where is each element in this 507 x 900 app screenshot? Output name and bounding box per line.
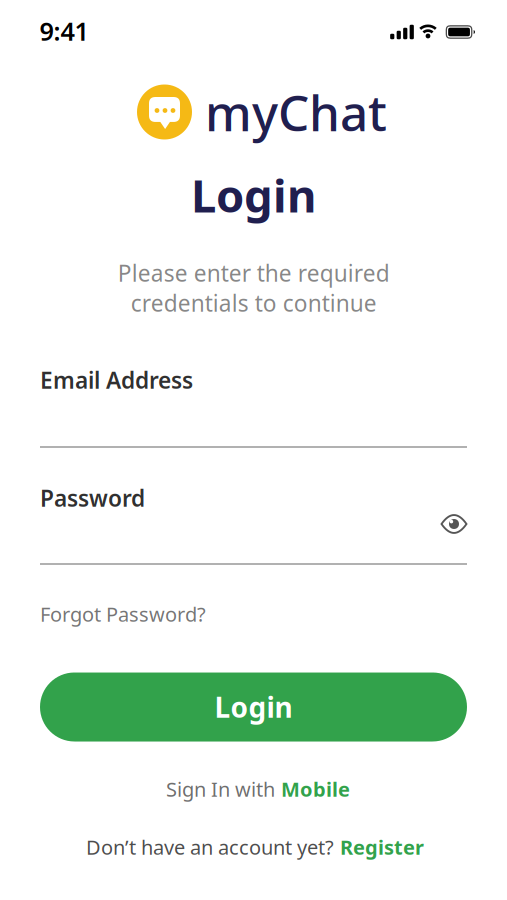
- staticText: Email Address: [40, 365, 193, 395]
- button[interactable]: Show password: [432, 508, 475, 540]
- staticText: Login: [214, 688, 292, 726]
- button[interactable]: Login: [40, 672, 467, 741]
- staticText: Don’t have an account yet?: [86, 834, 334, 860]
- staticText: Sign In with: [166, 776, 275, 802]
- button[interactable]: Forgot Password?: [40, 601, 206, 627]
- staticText: Forgot Password?: [40, 601, 206, 627]
- staticText: Please enter the required credentials to…: [117, 258, 389, 318]
- button[interactable]: Sign In with: [166, 776, 350, 802]
- staticText: Login: [191, 165, 316, 225]
- staticText: 9:41: [39, 14, 88, 48]
- button[interactable]: Don’t have an account yet?: [86, 834, 424, 860]
- staticText: myChat: [205, 79, 387, 145]
- staticText: Mobile: [281, 776, 350, 802]
- staticText: Password: [40, 483, 145, 513]
- staticText: Register: [340, 834, 424, 860]
